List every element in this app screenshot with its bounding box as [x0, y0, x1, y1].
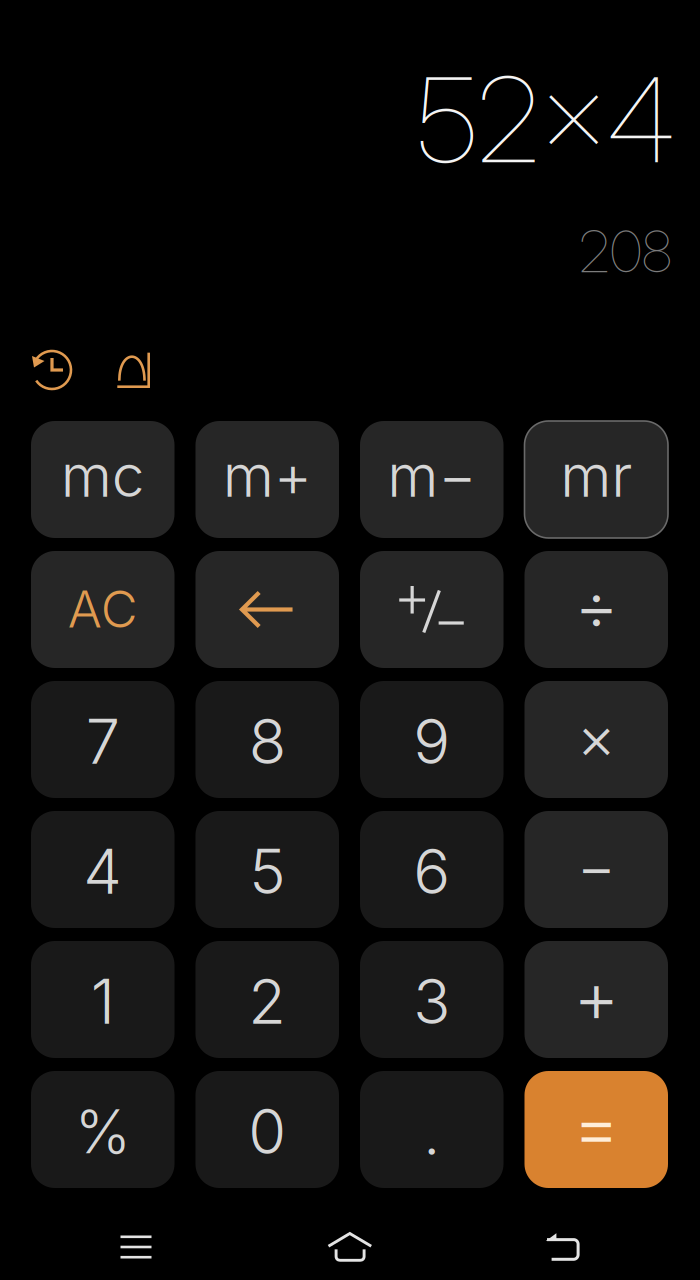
button[interactable]: 4 [31, 811, 174, 928]
button[interactable]: Plus minus [360, 551, 503, 668]
button[interactable]: Graph [116, 351, 150, 388]
staticText: 3 [413, 964, 450, 1039]
button[interactable]: History [31, 349, 73, 391]
staticText: × [577, 701, 616, 774]
button[interactable]: − [524, 811, 668, 928]
button[interactable]: = [524, 1071, 668, 1188]
staticText: + [573, 954, 619, 1039]
staticText: 8 [249, 704, 286, 779]
staticText: 7 [86, 704, 120, 779]
button[interactable]: m− [360, 421, 503, 538]
staticText: 9 [413, 704, 450, 779]
button[interactable]: 8 [195, 681, 339, 798]
staticText: . [423, 1097, 440, 1169]
button[interactable]: 2 [195, 941, 339, 1058]
staticText: m+ [223, 440, 312, 511]
button[interactable]: Home [290, 1220, 410, 1274]
button[interactable]: mr [524, 421, 668, 538]
button[interactable]: 5 [195, 811, 339, 928]
button[interactable]: × [524, 681, 668, 798]
button[interactable]: 3 [360, 941, 503, 1058]
staticText: 2 [248, 964, 286, 1039]
button[interactable]: Menu [76, 1220, 196, 1274]
staticText: 6 [413, 834, 450, 909]
button[interactable]: . [360, 1071, 503, 1188]
button[interactable]: 9 [360, 681, 503, 798]
button[interactable]: 7 [31, 681, 174, 798]
button[interactable]: % [31, 1071, 174, 1188]
staticText: mr [560, 440, 632, 511]
staticText: 5 [249, 834, 285, 909]
staticText: 1 [91, 964, 115, 1039]
button[interactable]: 6 [360, 811, 503, 928]
staticText: 52×4 [417, 48, 675, 190]
button[interactable]: ÷ [524, 551, 668, 668]
staticText: AC [68, 578, 138, 640]
staticText: − [577, 830, 616, 903]
staticText: ÷ [574, 564, 618, 647]
button[interactable]: + [524, 941, 668, 1058]
button[interactable]: mc [31, 421, 174, 538]
staticText: 208 [579, 217, 672, 286]
button[interactable]: 1 [31, 941, 174, 1058]
staticText: 4 [83, 834, 122, 909]
staticText: 0 [248, 1094, 286, 1169]
staticText: mc [61, 440, 145, 511]
button[interactable]: m+ [195, 421, 339, 538]
button[interactable]: Backspace [195, 551, 339, 668]
staticText: % [75, 1095, 131, 1168]
staticText: m− [387, 440, 476, 511]
staticText: = [573, 1083, 620, 1170]
button[interactable]: 0 [195, 1071, 339, 1188]
button[interactable]: AC [31, 551, 174, 668]
button[interactable]: Back [503, 1220, 623, 1274]
